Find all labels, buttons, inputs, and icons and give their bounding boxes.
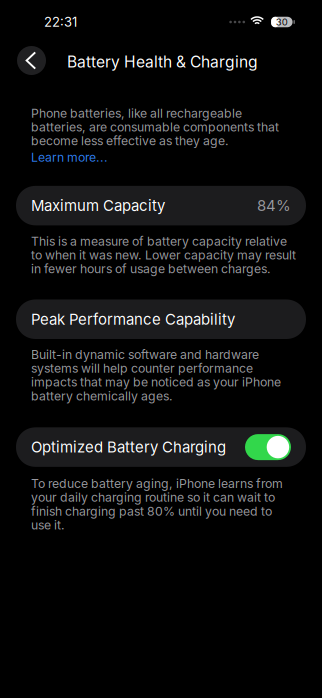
staticText: 30 bbox=[276, 16, 288, 28]
staticText: Optimized Battery Charging bbox=[31, 438, 226, 456]
staticText: Maximum Capacity bbox=[31, 197, 165, 215]
button[interactable]: Back bbox=[17, 46, 46, 75]
staticText: Learn more... bbox=[31, 150, 108, 165]
staticText: 84% bbox=[257, 197, 291, 215]
button[interactable]: Optimized Battery Charging bbox=[0, 427, 306, 467]
staticText: Peak Performance Capability bbox=[31, 310, 235, 328]
button[interactable]: Maximum Capacity bbox=[0, 186, 306, 225]
staticText: To reduce battery aging, iPhone learns f… bbox=[31, 476, 283, 532]
staticText: This is a measure of battery capacity re… bbox=[31, 234, 296, 276]
staticText: Built-in dynamic software and hardware s… bbox=[31, 347, 281, 403]
button[interactable]: Learn more... bbox=[0, 150, 297, 165]
staticText: Battery Health & Charging bbox=[67, 52, 258, 71]
button[interactable]: Peak Performance Capability bbox=[0, 299, 306, 339]
staticText: Phone batteries, like all rechargeable b… bbox=[31, 106, 279, 148]
staticText: 22:31 bbox=[44, 14, 77, 30]
